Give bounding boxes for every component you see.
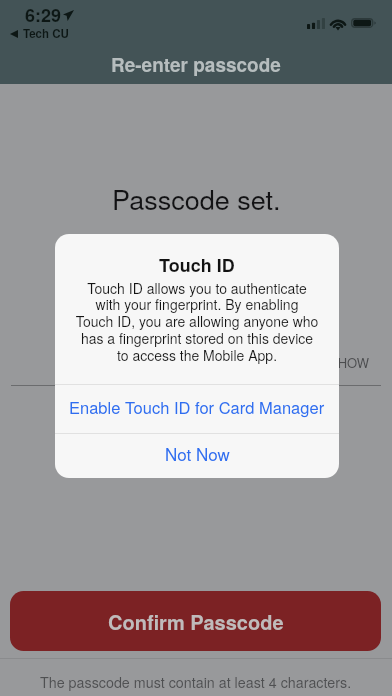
- other: Wi-Fi: [330, 18, 346, 29]
- button[interactable]: Confirm Passcode: [10, 591, 381, 651]
- button[interactable]: Enable Touch ID for Card Manager: [55, 385, 339, 433]
- staticText: The passcode must contain at least 4 cha…: [40, 672, 352, 692]
- staticText: SHOW: [329, 353, 370, 372]
- other: Cellular signal: [307, 18, 325, 29]
- other: Battery: [351, 18, 376, 28]
- staticText: 6:29: [25, 2, 62, 28]
- staticText: Enable Touch ID for Card Manager: [69, 395, 325, 419]
- staticText: Touch ID allows you to authenticate with…: [75, 278, 319, 365]
- other: Location: [63, 10, 74, 21]
- button[interactable]: Back to Tech CU: [5, 25, 73, 41]
- staticText: Re-enter passcode: [111, 51, 281, 78]
- staticText: Confirm Passcode: [108, 607, 284, 636]
- staticText: Not Now: [165, 441, 230, 465]
- staticText: Tech CU: [23, 25, 69, 41]
- button[interactable]: Not Now: [55, 434, 339, 477]
- staticText: Touch ID: [159, 252, 235, 278]
- staticText: Passcode set.: [112, 179, 281, 218]
